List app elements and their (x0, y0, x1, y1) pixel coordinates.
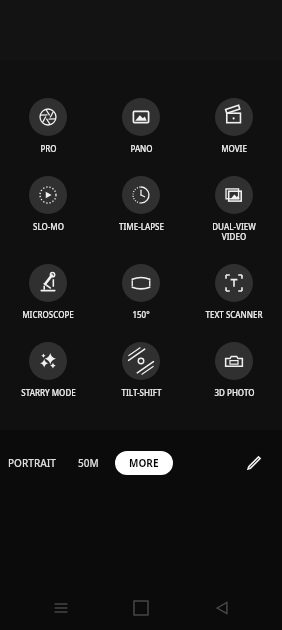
button[interactable]: PORTRAIT (4, 450, 60, 476)
staticText: SLO-MO (33, 221, 64, 232)
staticText: TILT-SHIFT (121, 387, 162, 398)
button[interactable]: 3D PHOTO (189, 340, 279, 400)
staticText: PORTRAIT (8, 456, 56, 470)
button[interactable]: Recents (41, 588, 81, 628)
button[interactable]: 150° (96, 262, 186, 322)
staticText: 150° (132, 309, 150, 320)
button[interactable]: TILT-SHIFT (96, 340, 186, 400)
button[interactable]: PRO (3, 96, 93, 156)
button[interactable]: MORE (115, 451, 173, 475)
staticText: STARRY MODE (21, 387, 76, 398)
staticText: 3D PHOTO (214, 387, 255, 398)
button[interactable]: STARRY MODE (3, 340, 93, 400)
staticText: 50M (78, 456, 99, 470)
button[interactable]: TEXT SCANNER (189, 262, 279, 322)
button[interactable]: 50M (74, 450, 103, 476)
button[interactable]: TIME-LAPSE (96, 174, 186, 234)
staticText: PRO (40, 143, 57, 154)
staticText: TEXT SCANNER (205, 309, 263, 320)
button[interactable]: MICROSCOPE (3, 262, 93, 322)
button[interactable]: PANO (96, 96, 186, 156)
staticText: MICROSCOPE (22, 309, 74, 320)
staticText: DUAL-VIEW VIDEO (212, 221, 256, 242)
button[interactable]: Home (121, 588, 161, 628)
button[interactable]: SLO-MO (3, 174, 93, 234)
staticText: MOVIE (221, 143, 247, 154)
staticText: PANO (130, 143, 153, 154)
staticText: MORE (129, 456, 159, 470)
button[interactable]: DUAL-VIEW VIDEO (189, 174, 279, 244)
button[interactable]: MOVIE (189, 96, 279, 156)
button[interactable]: Edit modes (240, 449, 268, 477)
button[interactable]: Back (202, 588, 242, 628)
staticText: TIME-LAPSE (119, 221, 164, 232)
